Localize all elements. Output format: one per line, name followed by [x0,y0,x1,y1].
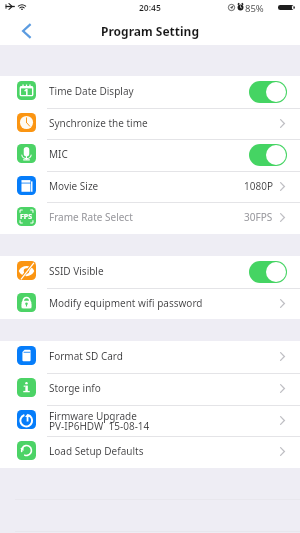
button[interactable]: Toggle on [249,81,287,103]
button[interactable]: SSID Visible [0,256,300,288]
staticText: 1 [24,86,29,97]
button[interactable]: Toggle on [249,261,287,283]
button[interactable]: Load Setup Defaults [0,436,300,468]
button[interactable]: Storge info [0,373,300,405]
staticText: Frame Rate Select [49,210,133,224]
staticText: SSID Visible [49,264,104,278]
staticText: Modify equipment wifi password [49,296,203,310]
staticText: MIC [49,147,68,161]
button[interactable]: Movie Size [0,171,300,203]
button[interactable]: FPS [0,202,300,234]
staticText: FPS [20,212,33,222]
staticText: 1080P [244,179,273,193]
staticText: Format SD Card [49,349,123,363]
staticText: Program Setting [101,23,199,39]
staticText: Movie Size [49,179,99,193]
staticText: 30FPS [244,210,273,224]
button[interactable]: Synchronize the time [0,108,300,140]
staticText: Storge info [49,381,101,395]
staticText: PV-IP6HDW 15-08-14 [49,419,150,433]
staticText: Time Date Display [49,84,134,98]
button[interactable]: Format SD Card [0,341,300,373]
button[interactable]: 1 [0,76,300,108]
button[interactable]: Modify equipment wifi password [0,288,300,320]
staticText: 20:45 [139,2,161,14]
button[interactable]: Firmware Upgrade [0,405,300,437]
staticText: Firmware Upgrade [49,409,137,423]
button[interactable]: Back [0,16,46,45]
button[interactable]: Toggle on [249,144,287,166]
staticText: 85% [245,2,264,15]
button[interactable]: MIC [0,139,300,171]
staticText: Synchronize the time [49,116,148,130]
staticText: Load Setup Defaults [49,444,144,458]
